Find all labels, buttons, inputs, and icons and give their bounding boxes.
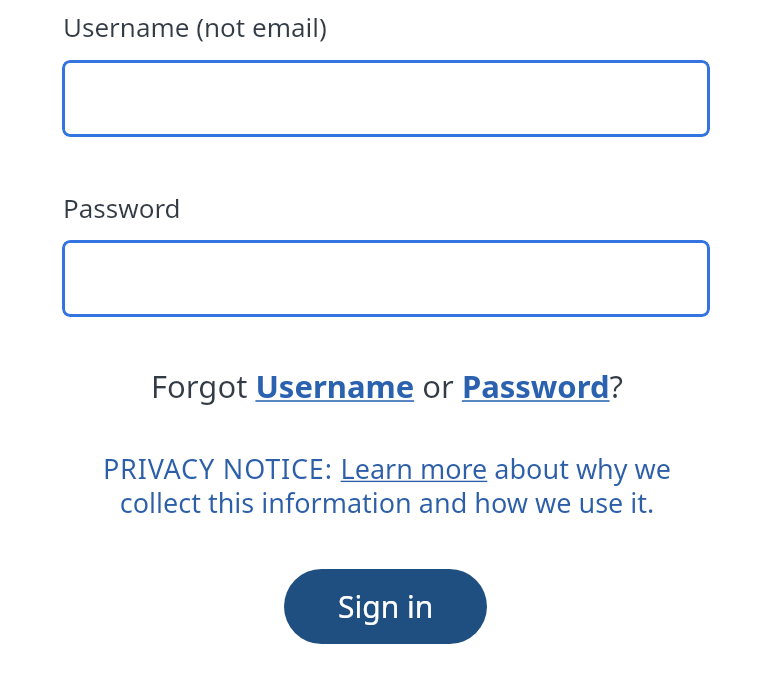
staticText: Password [63,190,181,225]
button[interactable]: PRIVACY NOTICE: Learn more about why we … [0,450,774,521]
button[interactable] [62,240,710,317]
staticText: Sign in [338,586,434,627]
button[interactable]: Forgot Username or Password? [0,365,774,407]
button[interactable] [62,60,710,137]
staticText: Username (not email) [63,9,327,44]
button[interactable]: Sign in [284,569,487,644]
